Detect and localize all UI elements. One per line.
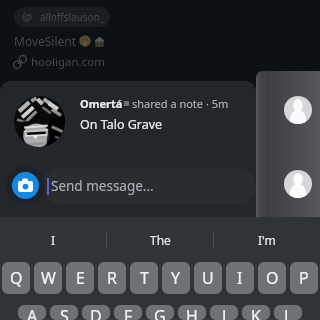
button[interactable]: H: [178, 305, 206, 320]
button[interactable]: Q: [2, 262, 30, 294]
button[interactable]: L: [274, 305, 302, 320]
button[interactable]: I'm: [214, 217, 320, 262]
button[interactable]: P: [290, 262, 318, 294]
staticText: A: [27, 305, 38, 320]
staticText: O: [266, 267, 279, 289]
staticText: I: [237, 267, 243, 289]
button[interactable]: Send message...: [42, 168, 256, 204]
button[interactable]: E: [66, 262, 94, 294]
button[interactable]: T: [130, 262, 158, 294]
button[interactable]: Contact avatar: [256, 71, 320, 217]
button[interactable]: Contact avatar: [284, 170, 312, 198]
staticText: I: [51, 232, 56, 248]
button[interactable]: U: [194, 262, 222, 294]
button[interactable]: A: [18, 305, 46, 320]
button[interactable]: Omertá: [0, 81, 256, 167]
staticText: H: [186, 305, 198, 320]
button[interactable]: F: [114, 305, 142, 320]
button[interactable]: O: [258, 262, 286, 294]
staticText: I'm: [258, 232, 276, 248]
button[interactable]: Contact avatar: [284, 96, 312, 124]
staticText: T: [140, 267, 149, 289]
staticText: S: [60, 305, 69, 320]
button[interactable]: K: [242, 305, 270, 320]
staticText: The: [150, 232, 171, 248]
button[interactable]: I: [0, 217, 106, 262]
staticText: U: [202, 267, 214, 289]
button[interactable]: D: [82, 305, 110, 320]
button[interactable]: G: [146, 305, 174, 320]
staticText: K: [251, 305, 261, 320]
staticText: Omertá: [80, 96, 123, 111]
staticText: E: [76, 267, 85, 289]
staticText: D: [90, 305, 102, 320]
staticText: P: [299, 267, 309, 289]
staticText: R: [107, 267, 117, 289]
staticText: Q: [10, 267, 23, 289]
staticText: J: [222, 305, 227, 320]
staticText: G: [154, 305, 166, 320]
staticText: L: [284, 305, 293, 320]
staticText: W: [41, 267, 56, 289]
button[interactable]: R: [98, 262, 126, 294]
staticText: MoveSilent: [14, 33, 77, 49]
button[interactable]: J: [210, 305, 238, 320]
staticText: shared a note · 5m: [132, 96, 229, 111]
button[interactable]: S: [50, 305, 78, 320]
button[interactable]: alloffslauson_: [14, 7, 110, 27]
staticText: Send message...: [51, 177, 154, 195]
button[interactable]: The: [107, 217, 213, 262]
staticText: Y: [171, 267, 181, 289]
staticText: hooligan.com: [31, 54, 105, 70]
button[interactable]: Camera: [12, 172, 39, 199]
staticText: F: [124, 305, 133, 320]
staticText: On Talo Grave: [80, 116, 163, 133]
staticText: alloffslauson_: [40, 10, 105, 24]
button[interactable]: Y: [162, 262, 190, 294]
button[interactable]: W: [34, 262, 62, 294]
button[interactable]: I: [226, 262, 254, 294]
